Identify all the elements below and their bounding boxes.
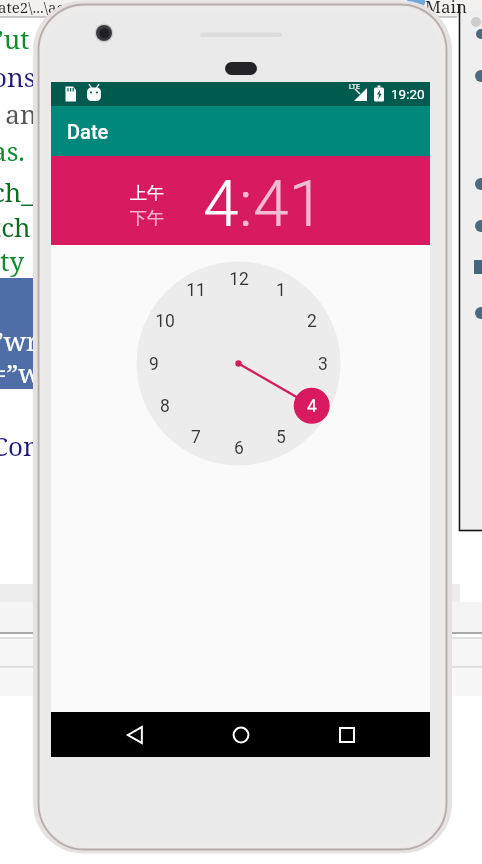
staticText: ity	[0, 243, 25, 278]
staticText: Con	[0, 428, 40, 463]
staticText: =”w	[0, 355, 41, 390]
staticText: 6	[234, 438, 244, 459]
staticText: ”wr	[0, 323, 39, 358]
staticText: ons	[0, 59, 36, 94]
button[interactable]: 2	[296, 307, 328, 335]
button[interactable]: Recent apps	[316, 712, 378, 757]
staticText: 8	[160, 396, 170, 417]
staticText: Date	[67, 120, 109, 143]
staticText: as.	[0, 133, 25, 168]
staticText: 19:20	[391, 86, 425, 102]
staticText: ”ut	[0, 21, 30, 56]
staticText: Main	[425, 0, 467, 18]
staticText: :	[239, 167, 253, 242]
staticText: 2	[307, 311, 317, 332]
button[interactable]: 6	[223, 434, 255, 462]
button[interactable]: Back	[104, 712, 166, 757]
button[interactable]: 8	[149, 392, 181, 420]
staticText: tch	[0, 209, 31, 244]
staticText: 10	[155, 311, 175, 332]
staticText: ch_	[0, 174, 34, 209]
staticText: LTE	[349, 83, 360, 91]
staticText: , an	[0, 96, 37, 131]
button[interactable]: 4	[203, 167, 239, 242]
button[interactable]: Date	[51, 106, 430, 156]
staticText: 1	[276, 280, 286, 301]
button[interactable]: 9	[138, 350, 170, 378]
staticText: 11	[186, 280, 206, 301]
staticText: 4	[307, 396, 317, 417]
button[interactable]: 7	[180, 423, 212, 451]
button[interactable]: 5	[265, 423, 297, 451]
staticText: 9	[149, 354, 159, 375]
staticText: 5	[276, 427, 286, 448]
button[interactable]: 41	[253, 167, 324, 242]
button[interactable]: Home	[210, 712, 272, 757]
button[interactable]: 上午	[130, 183, 164, 204]
staticText: 7	[191, 427, 201, 448]
button[interactable]: 10	[149, 307, 181, 335]
button[interactable]: 下午	[130, 208, 164, 229]
button[interactable]: 11	[180, 276, 212, 304]
button[interactable]: 3	[307, 350, 339, 378]
button[interactable]: 4	[296, 392, 328, 420]
button[interactable]: 12	[223, 265, 255, 293]
staticText: ate2\...\ac	[0, 0, 64, 17]
staticText: 12	[229, 269, 249, 290]
button[interactable]: 1	[265, 276, 297, 304]
staticText: 3	[318, 354, 328, 375]
